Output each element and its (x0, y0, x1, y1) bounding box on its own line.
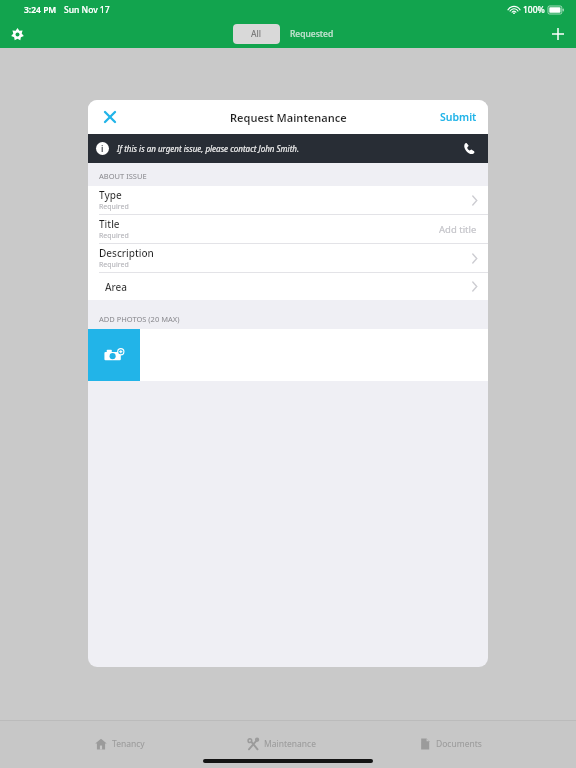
button[interactable]: Type (88, 186, 488, 214)
button[interactable]: Close (97, 104, 123, 130)
staticText: Documents (436, 738, 482, 750)
button[interactable]: Settings (5, 22, 29, 46)
staticText: Required (99, 231, 129, 241)
button[interactable]: All (233, 24, 280, 44)
staticText: Type (99, 188, 122, 202)
button[interactable]: Description (88, 244, 488, 272)
button[interactable]: Add request (546, 22, 570, 46)
staticText: Request Maintenance (230, 110, 347, 125)
button[interactable]: i (88, 134, 488, 163)
staticText: Requested (290, 28, 334, 40)
button[interactable]: Submit (429, 103, 488, 131)
staticText: ADD PHOTOS (20 MAX) (99, 314, 180, 324)
staticText: Description (99, 246, 154, 260)
staticText: 3:24 PM (24, 4, 57, 16)
staticText: Required (99, 260, 129, 270)
staticText: ABOUT ISSUE (99, 171, 147, 181)
staticText: Maintenance (264, 738, 316, 750)
staticText: Area (105, 280, 128, 294)
button[interactable]: Documents (411, 736, 490, 752)
button[interactable]: Requested (280, 24, 344, 44)
staticText: If this is an urgent issue, please conta… (117, 143, 299, 154)
staticText: Tenancy (112, 738, 145, 750)
button[interactable]: Area (88, 273, 488, 300)
button[interactable]: Call John Smith (459, 139, 479, 159)
button[interactable]: Title (88, 215, 488, 243)
staticText: Title (99, 217, 120, 231)
staticText: Required (99, 202, 129, 212)
button[interactable]: Add photo (88, 329, 140, 381)
button[interactable]: Maintenance (239, 736, 324, 752)
staticText: Add title (439, 223, 477, 236)
staticText: 100% (523, 4, 545, 16)
staticText: Sun Nov 17 (64, 4, 110, 16)
staticText: Submit (440, 110, 477, 124)
staticText: All (251, 28, 262, 40)
button[interactable]: Tenancy (87, 736, 153, 752)
staticText: i (101, 143, 104, 154)
